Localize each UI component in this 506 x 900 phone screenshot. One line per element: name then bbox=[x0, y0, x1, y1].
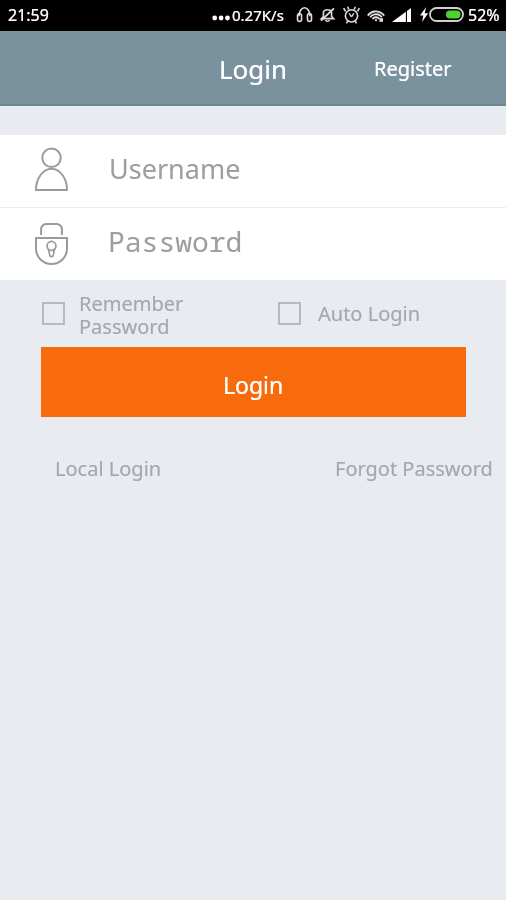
staticText: 0.27K/s bbox=[232, 5, 284, 25]
staticText: Local Login bbox=[55, 455, 162, 482]
staticText: 52% bbox=[468, 4, 500, 26]
staticText: Register bbox=[374, 55, 452, 82]
button[interactable]: Remember Password bbox=[42, 301, 184, 351]
button[interactable]: Password bbox=[0, 208, 506, 280]
button[interactable]: Username bbox=[0, 135, 506, 207]
button[interactable]: Register bbox=[374, 55, 452, 82]
other: Username bbox=[35, 149, 68, 191]
button[interactable]: Login bbox=[41, 347, 466, 417]
staticText: 21:59 bbox=[8, 4, 49, 26]
staticText: Login bbox=[223, 369, 284, 400]
staticText: Auto Login bbox=[318, 300, 421, 327]
other: Password bbox=[35, 223, 68, 265]
button[interactable]: Login bbox=[219, 51, 288, 86]
staticText: Forgot Password bbox=[335, 455, 493, 482]
staticText: Login bbox=[219, 51, 288, 86]
staticText: Remember Password bbox=[79, 290, 184, 340]
staticText: Username bbox=[109, 150, 241, 187]
button[interactable]: Auto Login bbox=[278, 301, 421, 328]
staticText: Password bbox=[108, 222, 243, 260]
button[interactable]: Local Login bbox=[55, 455, 162, 482]
button[interactable]: Forgot Password bbox=[335, 455, 493, 482]
